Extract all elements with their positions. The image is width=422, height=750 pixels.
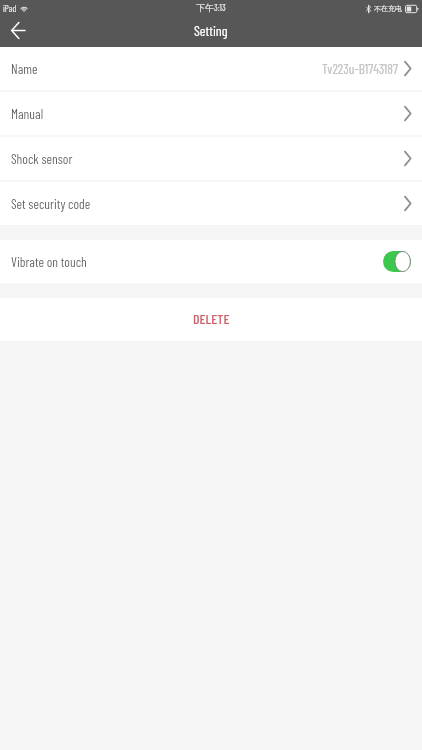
button[interactable]: Name xyxy=(0,47,422,90)
staticText: Manual xyxy=(11,105,44,121)
staticText: Setting xyxy=(194,22,228,39)
staticText: 不在充电 xyxy=(374,4,402,13)
button[interactable]: Set security code xyxy=(0,182,422,225)
button[interactable]: Manual xyxy=(0,92,422,135)
staticText: Shock sensor xyxy=(11,150,73,166)
staticText: Name xyxy=(11,60,38,76)
button[interactable]: Vibrate on touch xyxy=(0,240,422,283)
button[interactable]: Back xyxy=(0,16,36,45)
staticText: DELETE xyxy=(193,310,230,327)
button[interactable]: Vibrate on touch toggle xyxy=(383,251,411,272)
staticText: 下午3:13 xyxy=(196,2,226,14)
staticText: Set security code xyxy=(11,195,91,211)
staticText: iPad xyxy=(3,3,17,14)
staticText: Tv223u-B1743187 xyxy=(322,60,398,76)
button[interactable]: Shock sensor xyxy=(0,137,422,180)
staticText: Vibrate on touch xyxy=(11,253,87,269)
button[interactable]: DELETE xyxy=(0,298,422,341)
